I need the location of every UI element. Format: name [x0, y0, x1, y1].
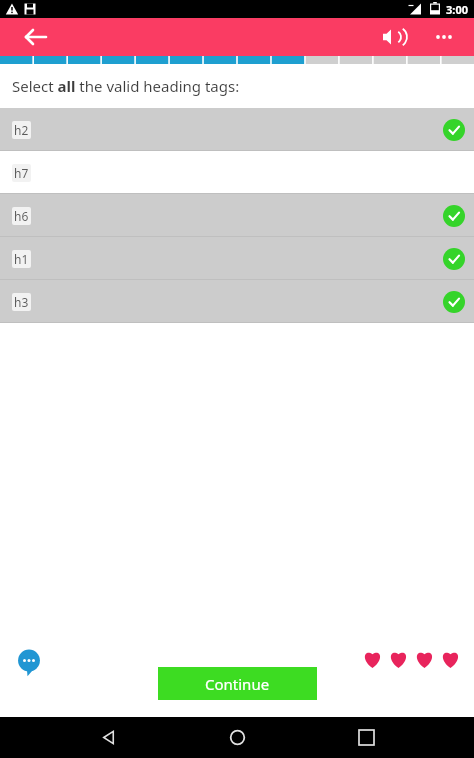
button[interactable]: h1 [0, 237, 474, 280]
staticText: h6 [14, 208, 29, 224]
staticText: Select all the valid heading tags: [12, 76, 240, 96]
staticText: h2 [14, 122, 29, 138]
button[interactable]: h7 [0, 151, 474, 194]
button[interactable]: Sound [374, 18, 412, 56]
button[interactable]: Back [18, 19, 54, 55]
staticText: h1 [14, 251, 29, 267]
button[interactable]: More options [426, 19, 462, 55]
staticText: 3:00 [446, 2, 468, 17]
staticText: h7 [14, 165, 29, 181]
button[interactable]: Recent apps [345, 717, 387, 758]
button[interactable]: h3 [0, 280, 474, 323]
button[interactable]: Home [216, 717, 258, 758]
button[interactable]: Continue [158, 667, 317, 700]
button[interactable]: h6 [0, 194, 474, 237]
button[interactable]: Back [87, 717, 129, 758]
button[interactable]: h2 [0, 108, 474, 151]
staticText: Continue [205, 674, 270, 694]
staticText: h3 [14, 294, 29, 310]
button[interactable]: Discuss [12, 645, 46, 679]
